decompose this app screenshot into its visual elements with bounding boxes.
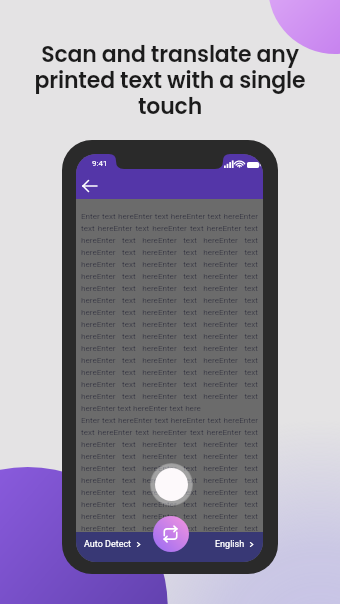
staticText: Auto Detect: [84, 539, 132, 550]
staticText: 9:41: [92, 159, 108, 168]
button[interactable]: Capture: [150, 463, 193, 506]
staticText: English: [215, 539, 245, 550]
button[interactable]: English: [211, 537, 258, 552]
staticText: Enter text hereEnter text hereEnter text…: [81, 211, 258, 562]
button[interactable]: Auto Detect: [80, 537, 145, 552]
button[interactable]: Back: [78, 174, 102, 198]
staticText: Scan and translate any printed text with…: [10, 39, 330, 122]
button[interactable]: Swap languages: [153, 516, 189, 552]
